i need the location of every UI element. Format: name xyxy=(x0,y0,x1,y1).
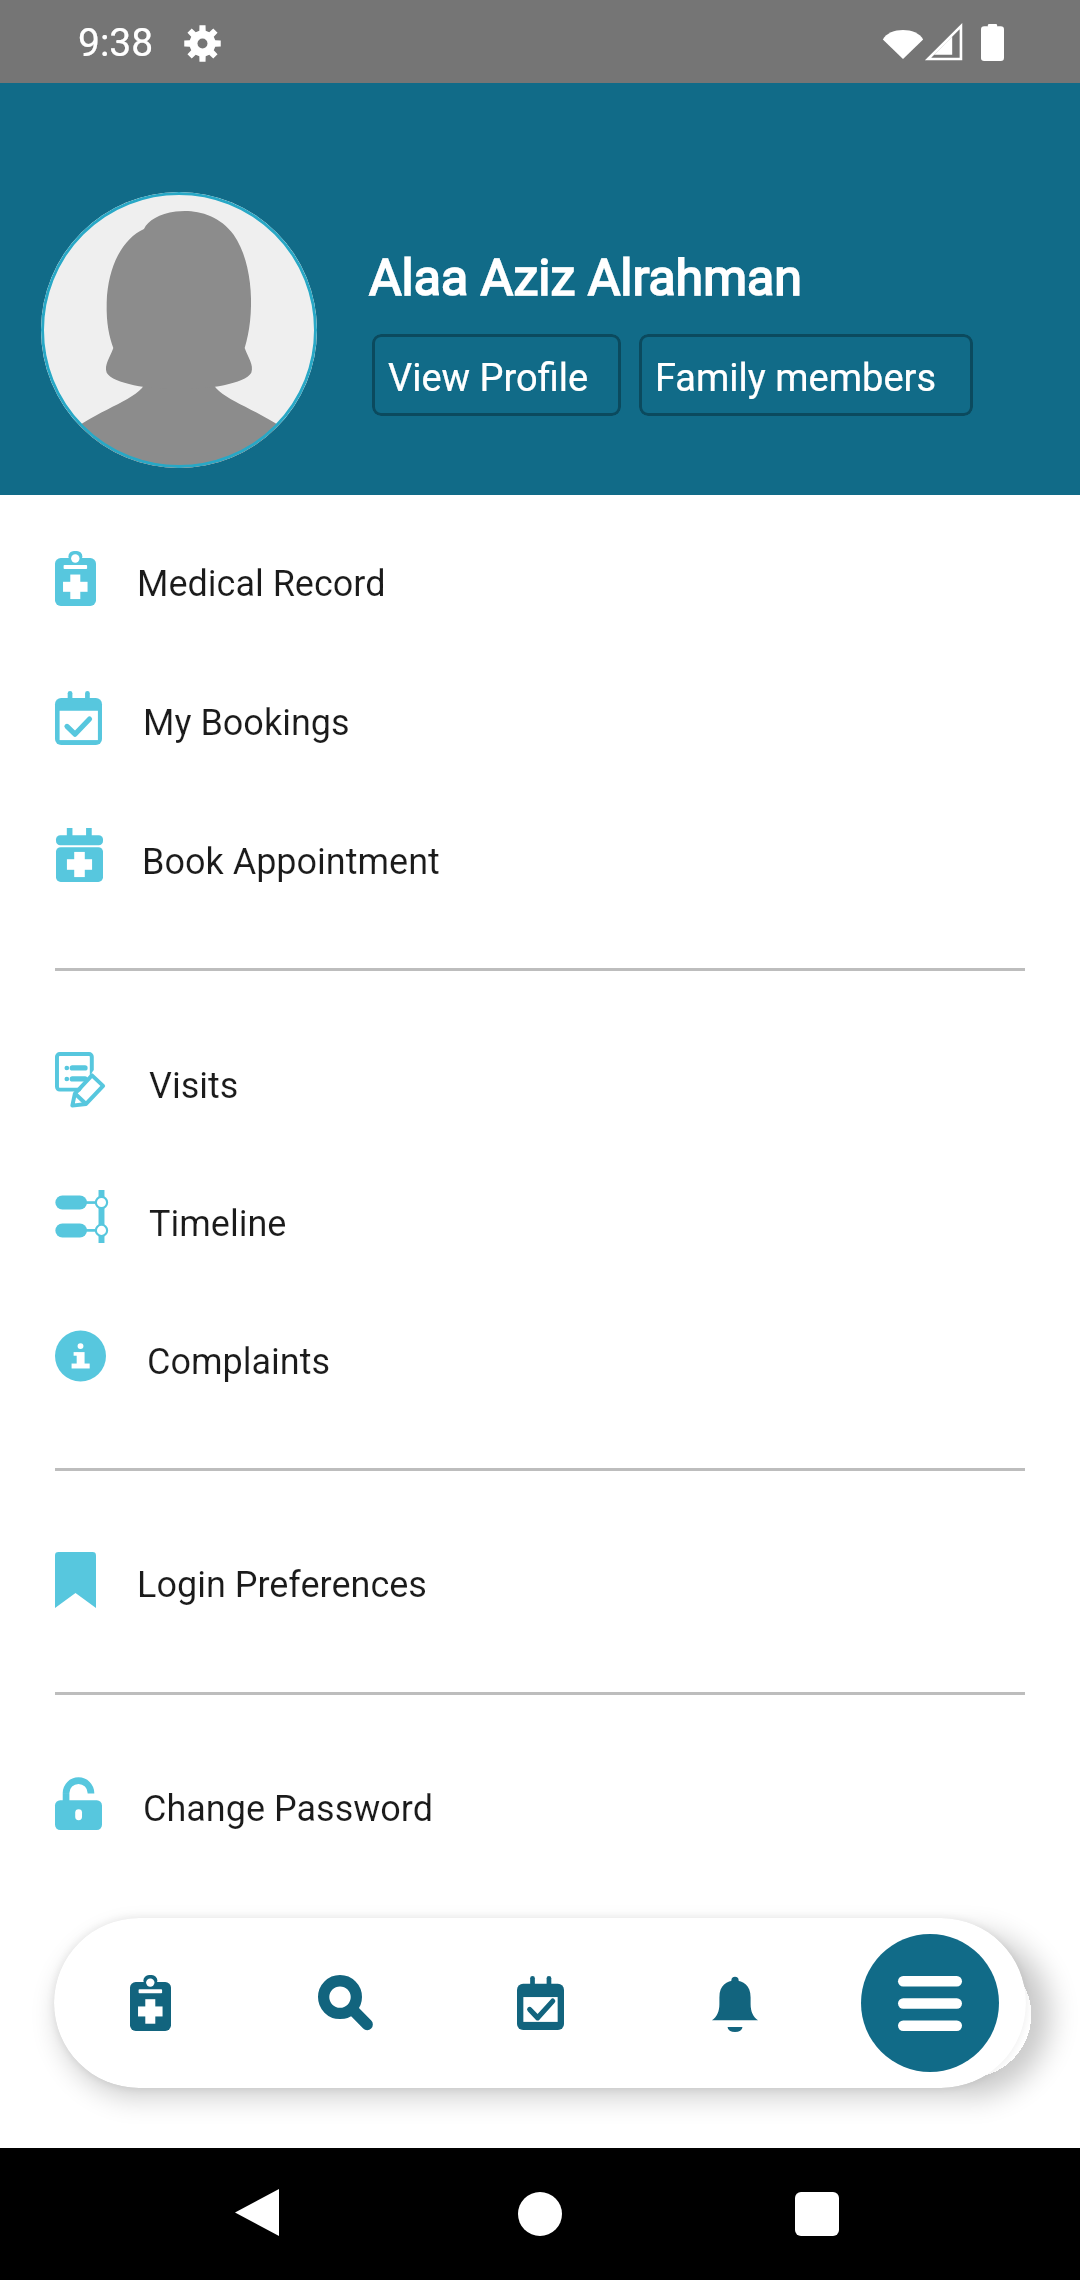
button[interactable]: Timeline xyxy=(0,1154,1080,1293)
button[interactable]: My Bookings xyxy=(0,653,1080,792)
button[interactable]: Visits xyxy=(0,1016,1080,1155)
button[interactable]: Book Appointment xyxy=(0,792,1080,931)
button[interactable]: View Profile xyxy=(372,334,621,416)
staticText: Medical Record xyxy=(137,563,386,605)
button[interactable]: Change Password xyxy=(0,1739,1080,1878)
staticText: Timeline xyxy=(149,1203,287,1245)
button[interactable]: Family members xyxy=(639,334,973,416)
staticText: Alaa Aziz Alrahman xyxy=(369,249,802,308)
staticText: View Profile xyxy=(388,356,589,401)
staticText: Visits xyxy=(149,1065,239,1107)
staticText: Book Appointment xyxy=(142,841,440,883)
staticText: Change Password xyxy=(143,1788,433,1830)
button[interactable]: Complaints xyxy=(0,1292,1080,1431)
button[interactable]: My bookings xyxy=(471,1934,609,2072)
button[interactable]: Search xyxy=(276,1934,414,2072)
button[interactable]: Notifications xyxy=(666,1934,804,2072)
staticText: Complaints xyxy=(147,1341,331,1383)
button[interactable]: Home xyxy=(518,2192,562,2236)
button[interactable]: Login Preferences xyxy=(0,1515,1080,1654)
button[interactable]: Medical records xyxy=(81,1934,219,2072)
staticText: 9:38 xyxy=(78,20,154,66)
staticText: My Bookings xyxy=(143,702,350,744)
button[interactable]: Recent apps xyxy=(795,2192,839,2236)
button[interactable]: Back xyxy=(235,2189,279,2236)
staticText: Family members xyxy=(655,356,937,401)
button[interactable]: Medical Record xyxy=(0,514,1080,653)
button[interactable]: Menu xyxy=(861,1934,999,2072)
staticText: Login Preferences xyxy=(137,1564,427,1606)
